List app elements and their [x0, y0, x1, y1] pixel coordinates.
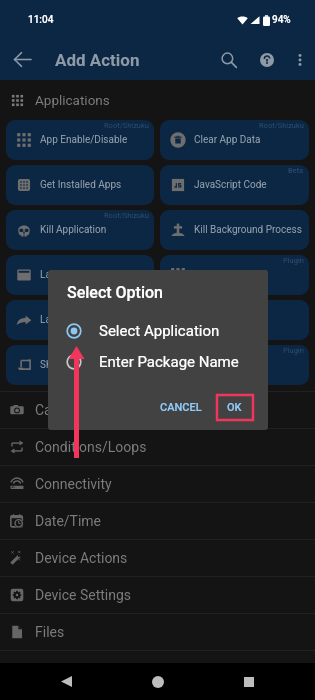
staticText: Kill Application — [40, 224, 107, 236]
staticText: Device Settings — [35, 587, 132, 603]
staticText: Clear App Data — [194, 134, 261, 146]
button[interactable]: CANCEL — [152, 396, 210, 419]
button[interactable]: Help — [249, 39, 285, 80]
button[interactable]: Conditions/Loops — [0, 429, 315, 465]
button[interactable]: Select Application — [48, 315, 268, 346]
button[interactable]: Root/Shizuku — [6, 120, 154, 160]
staticText: Select Option — [67, 283, 163, 302]
staticText: Root/Shizuku — [259, 121, 304, 130]
button[interactable]: Connectivity — [0, 466, 315, 502]
staticText: Shell Script — [40, 359, 90, 371]
button[interactable]: Root/Shizuku — [160, 120, 309, 160]
staticText: Files — [35, 624, 65, 640]
button[interactable]: Enter Package Name — [48, 346, 268, 377]
staticText: Launch Activity — [40, 314, 108, 326]
staticText: Device Actions — [35, 550, 128, 566]
staticText: Plugin — [283, 346, 304, 355]
staticText: Launch Service — [194, 314, 262, 326]
staticText: Connectivity — [35, 476, 112, 492]
staticText: 94% — [272, 14, 291, 26]
button[interactable]: OK — [216, 396, 253, 419]
button[interactable]: Home — [133, 663, 183, 700]
button[interactable]: Get Installed Apps — [6, 165, 154, 205]
staticText: Get Installed Apps — [40, 179, 122, 191]
staticText: Kill Background Process — [194, 224, 302, 236]
staticText: Enter Package Name — [99, 353, 239, 371]
staticText: Root/Shizuku — [104, 211, 149, 220]
staticText: Applications — [35, 92, 110, 108]
button[interactable]: Root/Shizuku — [6, 210, 154, 250]
staticText: 11:04 — [28, 14, 54, 26]
staticText: Select Application — [99, 322, 220, 340]
staticText: CANCEL — [160, 401, 202, 414]
staticText: Beta — [288, 166, 304, 175]
staticText: Open Website — [194, 359, 256, 371]
staticText: Conditions/Loops — [35, 439, 147, 455]
button[interactable]: Back — [0, 39, 44, 80]
button[interactable]: Launch Service — [160, 300, 309, 340]
button[interactable]: Files — [0, 614, 315, 650]
staticText: Launch App — [40, 269, 93, 281]
button[interactable]: Camera — [0, 392, 315, 428]
button[interactable]: Root/Plugin — [6, 345, 154, 385]
staticText: Launch Shortcut — [194, 269, 268, 281]
button[interactable]: Plugin — [160, 255, 309, 295]
button[interactable]: Back — [41, 663, 91, 700]
button[interactable]: Launch Activity — [6, 300, 154, 340]
button[interactable]: Kill Background Process — [160, 210, 309, 250]
staticText: Date/Time — [35, 513, 102, 529]
staticText: Plugin — [283, 256, 304, 265]
staticText: App Enable/Disable — [40, 134, 128, 146]
staticText: OK — [227, 401, 242, 414]
button[interactable]: Device Actions — [0, 540, 315, 576]
button[interactable]: Device Settings — [0, 577, 315, 613]
button[interactable]: Beta — [160, 165, 309, 205]
button[interactable]: Search — [209, 39, 249, 80]
staticText: Camera — [35, 402, 84, 418]
button[interactable]: Plugin — [160, 345, 309, 385]
staticText: JavaScript Code — [194, 179, 267, 191]
button[interactable]: Date/Time — [0, 503, 315, 539]
staticText: Root/Shizuku — [104, 121, 149, 130]
button[interactable]: Recents — [224, 663, 274, 700]
staticText: Add Action — [55, 50, 140, 70]
button[interactable]: More options — [285, 39, 315, 80]
button[interactable]: Launch App — [6, 255, 154, 295]
